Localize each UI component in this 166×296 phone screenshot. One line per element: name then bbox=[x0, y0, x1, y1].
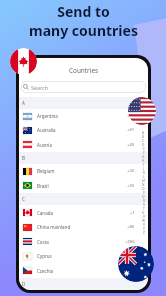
staticText: P bbox=[143, 191, 145, 195]
button[interactable]: Brazil bbox=[19, 178, 148, 193]
button[interactable]: Cyprus bbox=[19, 249, 148, 263]
staticText: Czechia bbox=[37, 268, 54, 274]
staticText: A bbox=[142, 131, 145, 135]
staticText: K bbox=[143, 171, 145, 175]
staticText: U bbox=[142, 211, 145, 215]
staticText: I bbox=[143, 163, 145, 167]
staticText: D bbox=[142, 143, 145, 147]
button[interactable]: Belgium bbox=[19, 164, 148, 178]
staticText: G bbox=[142, 155, 145, 159]
staticText: S bbox=[143, 203, 145, 207]
staticText: T bbox=[143, 207, 145, 211]
staticText: C bbox=[142, 139, 145, 143]
button[interactable]: Czechia bbox=[19, 263, 148, 278]
staticText: L bbox=[143, 175, 145, 179]
button[interactable]: Canada bbox=[19, 205, 148, 220]
staticText: D bbox=[22, 281, 26, 287]
staticText: C bbox=[22, 196, 25, 202]
button[interactable]: Search bbox=[21, 81, 146, 93]
staticText: Search bbox=[31, 84, 49, 91]
staticText: Brazil bbox=[37, 183, 49, 189]
staticText: +54 bbox=[127, 113, 135, 119]
button[interactable]: Canada bbox=[10, 48, 37, 75]
staticText: V bbox=[143, 215, 145, 219]
staticText: Australia bbox=[37, 127, 56, 133]
staticText: Costa bbox=[37, 239, 49, 245]
staticText: F bbox=[143, 151, 145, 155]
staticText: +357 bbox=[125, 253, 135, 259]
staticText: B bbox=[142, 135, 145, 139]
staticText: X bbox=[143, 223, 145, 227]
staticText: +43 bbox=[127, 142, 135, 148]
staticText: Belgium bbox=[37, 168, 55, 174]
staticText: Send to bbox=[57, 2, 110, 21]
staticText: H bbox=[142, 159, 145, 163]
staticText: Argentina bbox=[37, 113, 58, 119]
button[interactable]: Argentina bbox=[19, 109, 148, 123]
staticText: +32 bbox=[127, 168, 135, 174]
staticText: Q bbox=[142, 195, 145, 199]
staticText: Canada bbox=[37, 210, 53, 216]
button[interactable]: Australia bbox=[19, 123, 148, 137]
staticText: many countries bbox=[29, 21, 138, 40]
staticText: Austria bbox=[37, 142, 52, 148]
staticText: +86 bbox=[127, 224, 135, 230]
button[interactable]: Costa bbox=[19, 234, 148, 249]
staticText: +55 bbox=[127, 183, 135, 189]
button[interactable]: Austria bbox=[19, 137, 148, 152]
staticText: M bbox=[142, 179, 145, 183]
staticText: E bbox=[143, 147, 145, 151]
staticText: +1 bbox=[130, 210, 135, 216]
staticText: Countries bbox=[69, 66, 99, 75]
staticText: Cyprus bbox=[37, 253, 52, 259]
staticText: N bbox=[142, 183, 145, 187]
staticText: A bbox=[22, 100, 25, 106]
staticText: +61 bbox=[127, 127, 135, 133]
staticText: B bbox=[22, 155, 25, 161]
button[interactable]: United States bbox=[128, 97, 156, 125]
staticText: Z bbox=[143, 231, 145, 235]
button[interactable]: China mainland bbox=[19, 220, 148, 234]
button[interactable]: Australia bbox=[118, 246, 154, 282]
staticText: J bbox=[143, 167, 144, 171]
staticText: +506 bbox=[125, 239, 135, 245]
staticText: O bbox=[142, 187, 145, 191]
staticText: W bbox=[142, 219, 145, 223]
staticText: Y bbox=[143, 227, 145, 231]
staticText: R bbox=[143, 199, 145, 203]
staticText: +420 bbox=[125, 268, 135, 274]
staticText: China mainland bbox=[37, 224, 71, 230]
